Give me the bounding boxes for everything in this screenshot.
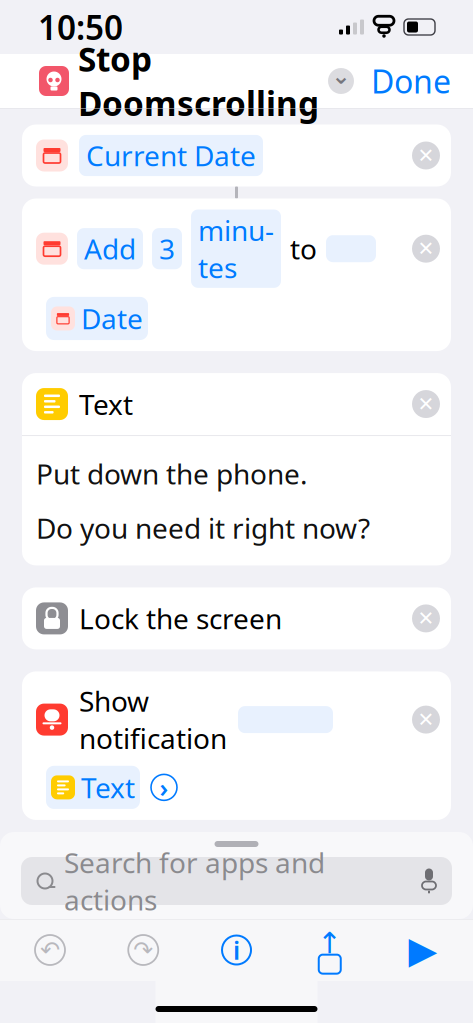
staticText: Put down the phone.	[36, 455, 308, 492]
staticText: ↶	[40, 936, 60, 964]
staticText: Do Not Disturb	[157, 855, 352, 892]
staticText: Stop Doomscrolling	[78, 37, 319, 125]
staticText: Current Date	[86, 137, 256, 174]
staticText: Date	[81, 300, 143, 337]
button[interactable]: Redo	[107, 924, 179, 976]
staticText: ▶	[408, 929, 437, 971]
button[interactable]: Remove action	[407, 384, 445, 424]
button[interactable]: Stop Doomscrolling	[39, 37, 354, 125]
staticText: ✕	[417, 708, 434, 731]
staticText: Show notification	[79, 682, 227, 757]
button[interactable]: Share	[294, 924, 366, 976]
button[interactable]: Done	[371, 60, 451, 102]
staticText: Search for apps and actions	[64, 844, 325, 918]
button[interactable]: Remove action	[407, 229, 445, 269]
staticText: 3	[159, 230, 175, 267]
staticText: On	[53, 905, 92, 942]
staticText: Text	[81, 769, 135, 806]
staticText: Time	[180, 905, 245, 942]
button[interactable]: Remove action	[407, 135, 445, 175]
staticText: ✕	[417, 862, 434, 885]
staticText: Do you need it right now?	[36, 509, 370, 546]
staticText: Text	[79, 385, 133, 423]
button[interactable]: Details	[200, 924, 272, 976]
staticText: ✕	[417, 393, 434, 415]
button[interactable]: Remove action	[407, 854, 445, 894]
staticText: ↷	[133, 936, 153, 964]
staticText: ↑	[317, 926, 342, 960]
button[interactable]: Search for apps and actions	[21, 857, 452, 905]
staticText: 10:50	[38, 5, 123, 49]
staticText: ⌄	[331, 63, 350, 89]
staticText: until	[107, 905, 165, 942]
button[interactable]: Run shortcut	[387, 924, 459, 976]
staticText: ✕	[417, 607, 434, 630]
staticText: Turn	[79, 855, 139, 892]
staticText: Add	[84, 230, 136, 267]
staticText: minutes	[198, 211, 274, 286]
button[interactable]: Remove action	[407, 598, 445, 638]
staticText: ✕	[417, 144, 434, 167]
staticText: to	[290, 230, 317, 267]
button[interactable]: Undo	[14, 924, 86, 976]
staticText: ›	[159, 770, 168, 804]
staticText: Lock the screen	[79, 600, 282, 637]
staticText: i	[233, 933, 240, 967]
button[interactable]: Remove action	[407, 700, 445, 740]
staticText: ✕	[417, 237, 434, 260]
staticText: Done	[371, 60, 451, 102]
